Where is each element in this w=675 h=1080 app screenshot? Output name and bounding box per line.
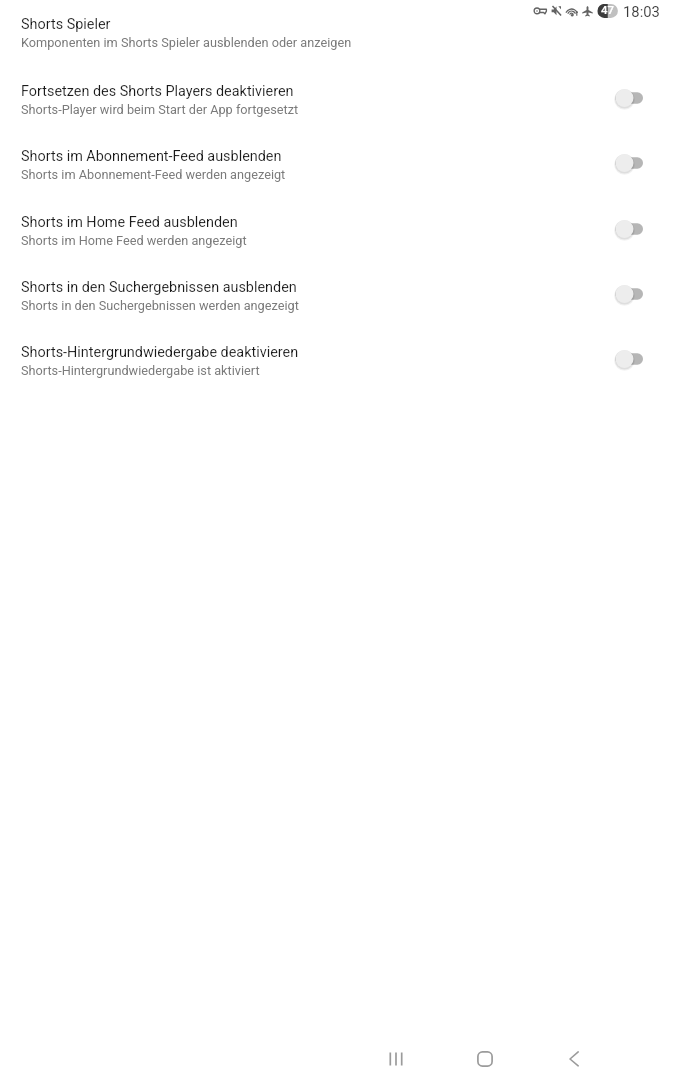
staticText: Shorts in den Suchergebnissen ausblenden <box>21 279 297 296</box>
staticText: Shorts im Abonnement-Feed ausblenden <box>21 148 282 165</box>
button[interactable]: Toggle setting <box>603 336 651 382</box>
staticText: Shorts-Hintergrundwiedergabe ist aktivie… <box>21 363 260 378</box>
button[interactable]: Home <box>445 1037 525 1080</box>
staticText: Shorts Spieler <box>21 16 111 33</box>
button[interactable]: Toggle setting <box>603 271 651 317</box>
staticText: Komponenten im Shorts Spieler ausblenden… <box>21 35 352 50</box>
button[interactable]: Shorts-Hintergrundwiedergabe deaktiviere… <box>0 333 675 398</box>
staticText: Shorts-Player wird beim Start der App fo… <box>21 102 299 117</box>
staticText: 47 <box>597 3 618 16</box>
staticText: Shorts im Home Feed werden angezeigt <box>21 233 247 248</box>
button[interactable]: Fortsetzen des Shorts Players deaktivier… <box>0 72 675 137</box>
staticText: Shorts-Hintergrundwiedergabe deaktiviere… <box>21 344 299 361</box>
button[interactable]: Toggle setting <box>603 206 651 252</box>
button[interactable]: Shorts in den Suchergebnissen ausblenden <box>0 268 675 333</box>
staticText: Shorts in den Suchergebnissen werden ang… <box>21 298 299 313</box>
staticText: Shorts im Abonnement-Feed werden angezei… <box>21 167 286 182</box>
button[interactable]: Shorts im Home Feed ausblenden <box>0 203 675 268</box>
button[interactable]: Back <box>534 1037 614 1080</box>
button[interactable]: Toggle setting <box>603 75 651 121</box>
staticText: Shorts im Home Feed ausblenden <box>21 214 238 231</box>
staticText: 18:03 <box>623 3 660 20</box>
button[interactable]: Toggle setting <box>603 140 651 186</box>
button[interactable]: Recent apps <box>356 1037 436 1080</box>
button[interactable]: Shorts im Abonnement-Feed ausblenden <box>0 137 675 202</box>
staticText: Fortsetzen des Shorts Players deaktivier… <box>21 83 294 100</box>
